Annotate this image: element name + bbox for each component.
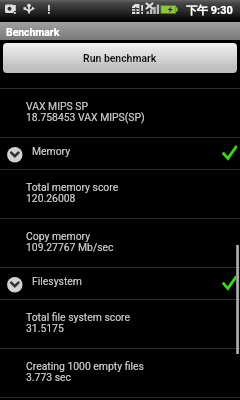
- button[interactable]: Copy memory 109.27767 Mb/sec: [0, 219, 240, 267]
- staticText: Copy memory 109.27767 Mb/sec: [26, 230, 114, 254]
- staticText: Filesystem: [32, 275, 82, 287]
- other: Completed: [222, 145, 238, 161]
- button[interactable]: Total memory score 120.26008: [0, 170, 240, 218]
- button[interactable]: VAX MIPS SP 18.758453 VAX MIPS(SP): [0, 89, 240, 137]
- button[interactable]: Filesystem: [0, 268, 240, 299]
- staticText: VAX MIPS SP 18.758453 VAX MIPS(SP): [26, 100, 145, 124]
- staticText: Run benchmark: [83, 52, 157, 64]
- staticText: Total file system score 31.5175: [26, 311, 131, 335]
- button[interactable]: Memory: [0, 138, 240, 169]
- other: Completed: [222, 275, 238, 291]
- staticText: 下午 9:30: [186, 3, 233, 17]
- staticText: Total memory score 120.26008: [26, 181, 119, 205]
- staticText: Benchmark: [6, 26, 60, 38]
- button[interactable]: Total file system score 31.5175: [0, 300, 240, 348]
- staticText: Memory: [32, 145, 71, 157]
- staticText: Creating 1000 empty files 3.773 sec: [26, 360, 144, 384]
- button[interactable]: Run benchmark: [3, 43, 237, 73]
- button[interactable]: Creating 1000 empty files 3.773 sec: [0, 349, 240, 397]
